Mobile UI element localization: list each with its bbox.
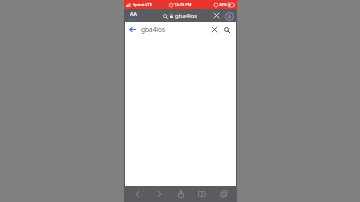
button[interactable]: Share [173,186,189,202]
button[interactable]: Back [127,24,138,35]
button[interactable]: Bookmarks [194,186,210,202]
button[interactable]: Downloads [224,11,234,21]
button[interactable]: Search [222,25,232,35]
staticText: 12:15 PM [174,2,192,7]
staticText: 26% [219,2,227,7]
button[interactable]: Forward [151,186,167,202]
staticText: gba4ios [175,12,198,20]
button[interactable]: gba4ios [163,12,198,20]
staticText: gba4ios [141,25,166,34]
button[interactable]: Clear [210,25,219,34]
staticText: Sprint LTE [133,2,153,7]
button[interactable]: Stop loading [212,11,221,20]
staticText: AA [130,11,137,18]
button[interactable]: Page settings [127,10,139,21]
button[interactable]: Back [130,186,146,202]
button[interactable]: Tabs [216,186,232,202]
